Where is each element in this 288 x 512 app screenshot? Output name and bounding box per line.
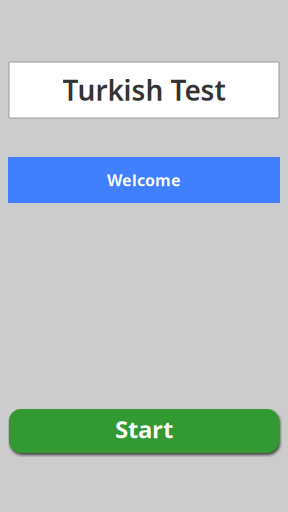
staticText: Turkish Test (62, 71, 225, 109)
button[interactable]: Start (9, 409, 279, 453)
staticText: Start (115, 413, 173, 445)
staticText: Welcome (107, 169, 181, 191)
